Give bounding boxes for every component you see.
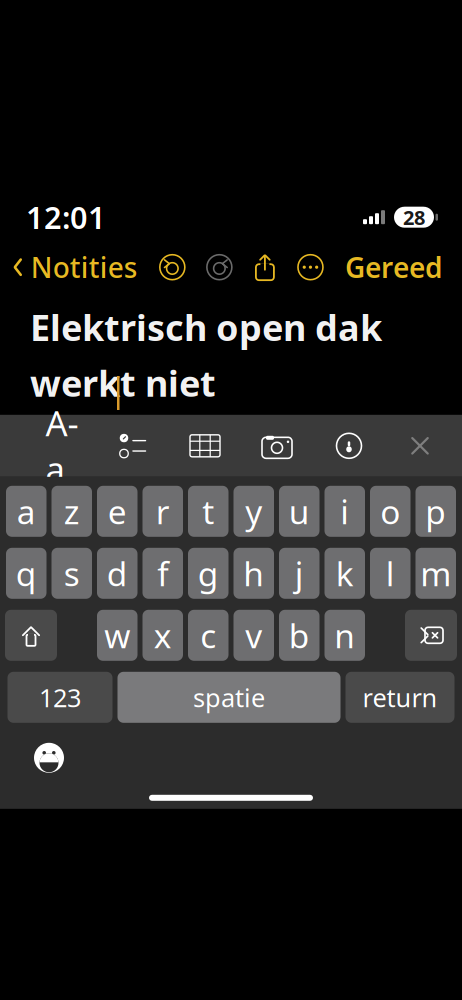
button[interactable]: m <box>415 548 456 599</box>
button[interactable]: Format <box>42 423 82 469</box>
button[interactable]: More <box>298 255 323 280</box>
button[interactable]: p <box>415 486 456 537</box>
staticText: Gereed <box>345 249 443 286</box>
button[interactable]: f <box>142 548 183 599</box>
staticText: h <box>243 551 264 595</box>
staticText: 12:01 <box>26 197 106 237</box>
button[interactable]: s <box>51 548 92 599</box>
staticText: Elektrisch open dak werkt niet <box>30 303 382 407</box>
staticText: n <box>334 613 355 657</box>
button[interactable]: g <box>188 548 228 599</box>
button[interactable]: h <box>233 548 274 599</box>
button[interactable]: n <box>324 610 365 661</box>
staticText: return <box>362 680 437 714</box>
staticText: v <box>245 613 262 657</box>
staticText: t <box>202 489 214 533</box>
staticText: j <box>295 551 304 595</box>
staticText: p <box>425 489 446 533</box>
button[interactable]: k <box>324 548 365 599</box>
button[interactable]: a <box>6 486 46 537</box>
button[interactable]: Markup <box>328 423 370 469</box>
staticText: o <box>380 489 400 533</box>
button[interactable]: Hide keyboard <box>400 423 440 469</box>
button[interactable]: j <box>279 548 319 599</box>
button[interactable]: v <box>233 610 274 661</box>
staticText: l <box>386 551 395 595</box>
staticText: f <box>157 551 168 595</box>
button[interactable]: y <box>233 486 274 537</box>
staticText: u <box>289 489 310 533</box>
button[interactable]: x <box>142 610 183 661</box>
staticText: 123 <box>39 680 81 714</box>
staticText: d <box>107 551 128 595</box>
button[interactable]: spatie <box>117 672 340 723</box>
staticText: k <box>336 551 354 595</box>
staticText: i <box>340 489 349 533</box>
staticText: c <box>200 613 216 657</box>
button[interactable]: c <box>188 610 228 661</box>
button[interactable]: Share <box>254 253 276 281</box>
button[interactable]: w <box>97 610 137 661</box>
staticText: Notities <box>31 249 138 286</box>
staticText: spatie <box>193 680 265 714</box>
button[interactable]: r <box>142 486 183 537</box>
staticText: r <box>156 489 170 533</box>
staticText: b <box>289 613 310 657</box>
button[interactable]: Notities <box>12 241 138 294</box>
button[interactable]: Emoji <box>27 738 71 778</box>
button[interactable]: d <box>97 548 137 599</box>
staticText: s <box>64 551 80 595</box>
button[interactable]: Checklist <box>112 423 154 469</box>
button[interactable]: Shift <box>5 610 57 661</box>
staticText: 28 <box>403 204 425 230</box>
button[interactable]: o <box>370 486 410 537</box>
button[interactable]: e <box>97 486 137 537</box>
button[interactable]: Undo <box>160 255 185 280</box>
staticText: m <box>420 551 451 595</box>
staticText: Aa <box>45 400 78 492</box>
staticText: z <box>64 489 80 533</box>
button[interactable]: q <box>6 548 46 599</box>
button[interactable]: b <box>279 610 319 661</box>
staticText: y <box>245 489 262 533</box>
button[interactable]: Redo <box>207 255 232 280</box>
button[interactable]: Table <box>184 423 226 469</box>
staticText: g <box>198 551 219 595</box>
staticText: q <box>16 551 37 595</box>
button[interactable]: Delete <box>405 610 457 661</box>
button[interactable]: 123 <box>7 672 112 723</box>
staticText: w <box>104 613 130 657</box>
staticText: a <box>17 489 36 533</box>
button[interactable]: l <box>370 548 410 599</box>
button[interactable]: t <box>188 486 228 537</box>
button[interactable]: i <box>324 486 365 537</box>
button[interactable]: Camera <box>256 423 298 469</box>
button[interactable]: return <box>345 672 454 723</box>
button[interactable]: Gereed <box>345 241 443 294</box>
staticText: x <box>154 613 172 657</box>
button[interactable]: z <box>51 486 92 537</box>
button[interactable]: u <box>279 486 319 537</box>
staticText: e <box>108 489 127 533</box>
